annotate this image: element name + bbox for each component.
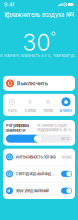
staticText: 9:41: [4, 1, 14, 8]
button[interactable]: Авто: [3, 97, 21, 113]
staticText: 30: [22, 29, 50, 56]
staticText: 45 %: [61, 137, 69, 141]
staticText: Авто: [7, 108, 16, 113]
button[interactable]: Humidity level: [6, 135, 72, 143]
button[interactable]: Back: [2, 9, 13, 21]
button[interactable]: Светодиодный индикатор: [3, 166, 75, 182]
staticText: Светодиодный индикатор: [15, 171, 55, 176]
staticText: Влажн.: [59, 108, 72, 113]
staticText: Звук уведомлений: [15, 188, 48, 193]
staticText: Холод: [24, 108, 35, 113]
staticText: Макс: [62, 154, 72, 159]
staticText: В комнате: влажность 45 %, температура 2…: [0, 53, 78, 58]
staticText: Увлажнитель воздуха №1: [4, 11, 74, 18]
button[interactable]: Влажн.: [57, 97, 75, 113]
button[interactable]: Интенсивность потока: [3, 149, 75, 165]
staticText: Установить будет поддерживать 45 %: [37, 123, 72, 132]
button[interactable]: More options: [65, 9, 76, 21]
button[interactable]: Холод: [21, 97, 39, 113]
button[interactable]: Тепло: [39, 97, 57, 113]
staticText: Интенсивность потока: [15, 154, 55, 159]
staticText: Регулировка влажности: [6, 123, 29, 133]
staticText: Выключить: [17, 80, 48, 87]
staticText: Тепло: [43, 108, 53, 113]
staticText: °: [50, 29, 55, 43]
button[interactable]: Звук уведомлений: [3, 182, 75, 199]
button[interactable]: Выключить: [3, 76, 75, 91]
